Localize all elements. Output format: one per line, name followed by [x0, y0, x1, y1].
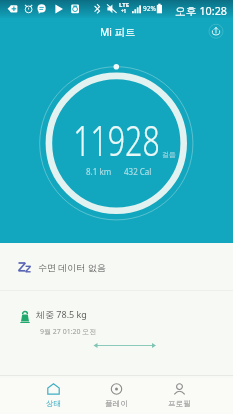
staticText: 오후 10:28: [175, 3, 227, 18]
staticText: 상태: [46, 399, 62, 409]
button[interactable]: 프로필: [148, 378, 211, 414]
staticText: 8.1 km: [86, 166, 112, 177]
staticText: 걸음: [162, 150, 176, 159]
button[interactable]: 체중 78.5 kg: [0, 291, 233, 337]
staticText: 수면 데이터 없음: [38, 261, 106, 273]
staticText: 9월 27 01:20 오전: [40, 327, 97, 337]
button[interactable]: 동기화: [205, 20, 227, 42]
staticText: Mi 피트: [100, 25, 136, 39]
staticText: 프로필: [168, 399, 191, 409]
staticText: 432 Cal: [124, 166, 152, 177]
staticText: 플레이: [105, 399, 128, 409]
staticText: LTE: [119, 1, 130, 9]
staticText: 92%: [143, 4, 156, 13]
staticText: 11928: [73, 110, 160, 169]
button[interactable]: 수면 데이터 없음: [0, 244, 233, 290]
staticText: 체중 78.5 kg: [36, 308, 87, 320]
button[interactable]: 플레이: [85, 378, 148, 414]
staticText: +1: [121, 8, 127, 14]
button[interactable]: 상태: [22, 378, 85, 414]
